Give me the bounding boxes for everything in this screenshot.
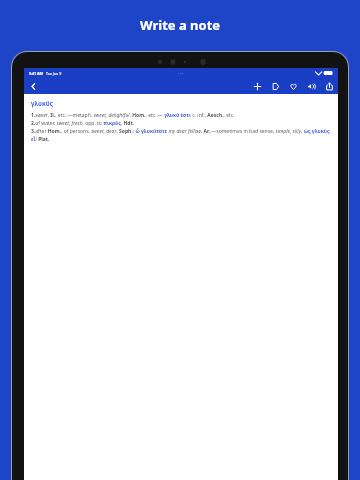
button[interactable]: Share bbox=[322, 79, 336, 93]
staticText: • • • bbox=[178, 71, 184, 76]
staticText: 9:41 AM bbox=[29, 71, 43, 76]
button[interactable]: Speak bbox=[304, 79, 318, 93]
button[interactable]: Note bbox=[268, 79, 282, 93]
staticText: γλυκύς bbox=[31, 99, 53, 107]
button[interactable]: Add bbox=[250, 79, 264, 93]
button[interactable]: Back bbox=[26, 79, 40, 93]
staticText: Write a note bbox=[140, 16, 221, 34]
staticText: 1.sweet, Il., etc.:—metaph. sweet, delig… bbox=[31, 112, 331, 143]
button[interactable]: Favorite bbox=[286, 79, 300, 93]
staticText: Tue Jan 9 bbox=[46, 71, 62, 76]
